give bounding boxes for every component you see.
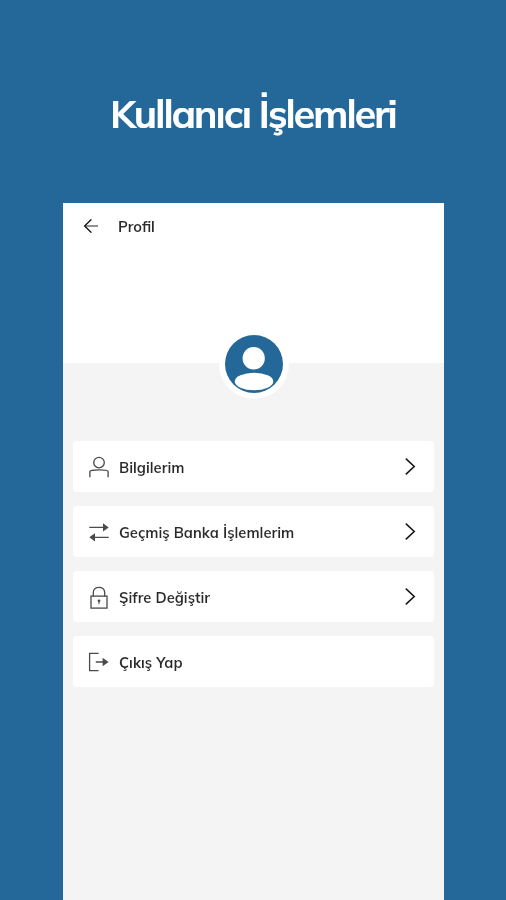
staticText: Geçmiş Banka İşlemlerim <box>119 523 295 541</box>
button[interactable]: Bilgilerim <box>73 441 434 492</box>
staticText: Profil <box>118 217 155 235</box>
button[interactable]: Back <box>76 211 105 240</box>
staticText: Bilgilerim <box>119 458 185 476</box>
button[interactable]: Geçmiş Banka İşlemlerim <box>73 506 434 557</box>
staticText: Çıkış Yap <box>119 653 183 671</box>
staticText: Şifre Değiştir <box>119 588 211 606</box>
button[interactable]: Şifre Değiştir <box>73 571 434 622</box>
staticText: Kullanıcı İşlemleri <box>0 89 506 138</box>
button[interactable]: Çıkış Yap <box>73 636 434 687</box>
